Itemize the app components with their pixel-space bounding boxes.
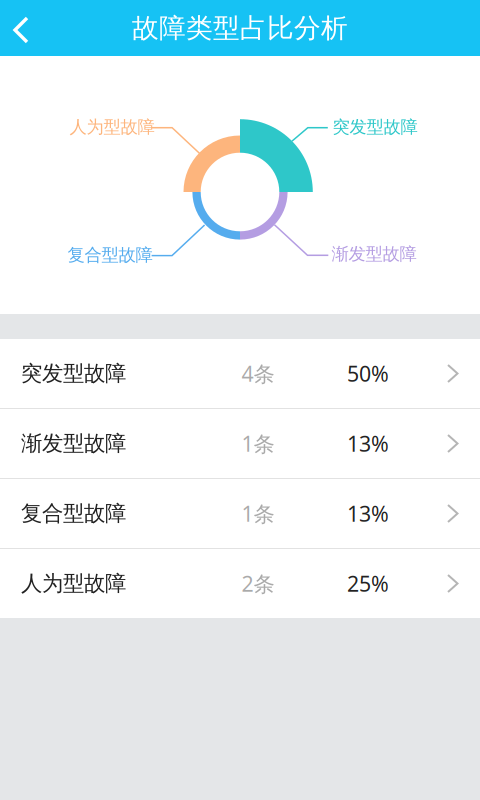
staticText: 1条 <box>241 499 274 528</box>
staticText: 4条 <box>241 359 274 388</box>
staticText: 1条 <box>241 429 274 458</box>
button[interactable]: 突发型故障 <box>0 339 480 408</box>
button[interactable]: 复合型故障 <box>0 479 480 548</box>
staticText: 2条 <box>241 569 274 598</box>
staticText: 13% <box>347 429 389 458</box>
staticText: 人为型故障 <box>21 570 126 596</box>
staticText: 突发型故障 <box>332 116 417 138</box>
staticText: 人为型故障 <box>69 116 154 138</box>
staticText: 复合型故障 <box>21 500 126 526</box>
staticText: 突发型故障 <box>21 360 126 386</box>
staticText: 50% <box>347 359 389 388</box>
staticText: 故障类型占比分析 <box>132 12 348 44</box>
staticText: 复合型故障 <box>67 244 152 266</box>
staticText: 渐发型故障 <box>331 243 416 265</box>
button[interactable]: 人为型故障 <box>0 549 480 618</box>
staticText: 渐发型故障 <box>21 430 126 456</box>
button[interactable]: Back <box>0 0 43 56</box>
staticText: 25% <box>347 569 389 598</box>
staticText: 13% <box>347 499 389 528</box>
button[interactable]: 渐发型故障 <box>0 409 480 478</box>
